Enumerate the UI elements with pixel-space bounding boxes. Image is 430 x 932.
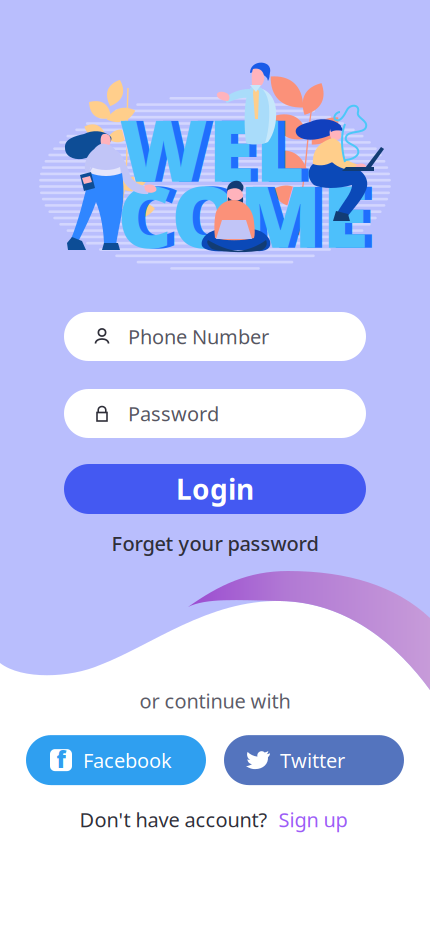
staticText: Forget your password	[111, 530, 318, 557]
staticText: WEL	[126, 92, 312, 205]
staticText: Password	[128, 400, 219, 427]
staticText: Facebook	[83, 747, 172, 773]
staticText: Sign up	[278, 806, 347, 833]
staticText: COME	[124, 158, 376, 271]
button[interactable]: Sign up	[275, 803, 350, 836]
staticText: COME	[117, 158, 369, 271]
staticText: WEL	[119, 92, 305, 205]
staticText: f	[56, 744, 65, 774]
button[interactable]: Twitter	[224, 735, 404, 785]
staticText: Phone Number	[128, 323, 269, 350]
staticText: Twitter	[280, 747, 345, 773]
button[interactable]: Phone Number	[64, 312, 366, 361]
button[interactable]: Forget your password	[107, 526, 322, 561]
button[interactable]: Password	[64, 389, 366, 438]
button[interactable]: Login	[64, 464, 366, 514]
staticText: or continue with	[139, 688, 290, 714]
staticText: Login	[176, 470, 254, 508]
staticText: Don't have account?	[79, 806, 267, 833]
button[interactable]: f	[26, 735, 206, 785]
